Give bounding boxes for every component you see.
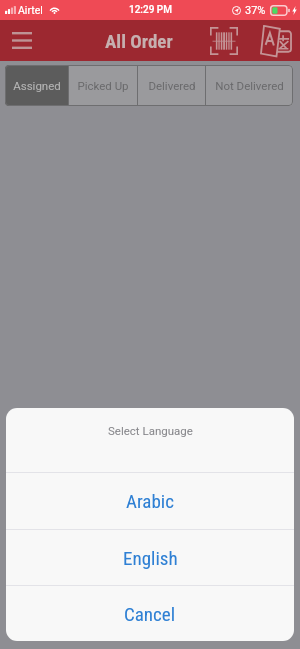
staticText: 37% [245, 4, 266, 17]
staticText: English [123, 547, 178, 569]
staticText: Assigned [13, 79, 61, 92]
staticText: Picked Up [77, 79, 129, 92]
button[interactable]: Arabic [6, 473, 294, 529]
button[interactable]: Assigned [5, 65, 68, 106]
button[interactable]: Open navigation menu [0, 20, 44, 61]
button[interactable]: Delivered [138, 65, 205, 106]
staticText: Select Language [108, 424, 193, 437]
staticText: 12:29 PM [129, 4, 172, 16]
button[interactable]: English [6, 530, 294, 585]
staticText: Not Delivered [215, 79, 284, 92]
staticText: Airtel [18, 4, 43, 16]
staticText: All Order [105, 30, 173, 52]
staticText: Arabic [126, 490, 174, 512]
button[interactable]: Cancel [6, 586, 294, 641]
button[interactable]: Not Delivered [206, 65, 293, 106]
staticText: Delivered [148, 79, 196, 92]
staticText: Cancel [124, 603, 176, 625]
button[interactable]: Picked Up [69, 65, 137, 106]
button[interactable]: Scan barcode [207, 20, 241, 61]
button[interactable]: Change language [258, 20, 294, 61]
